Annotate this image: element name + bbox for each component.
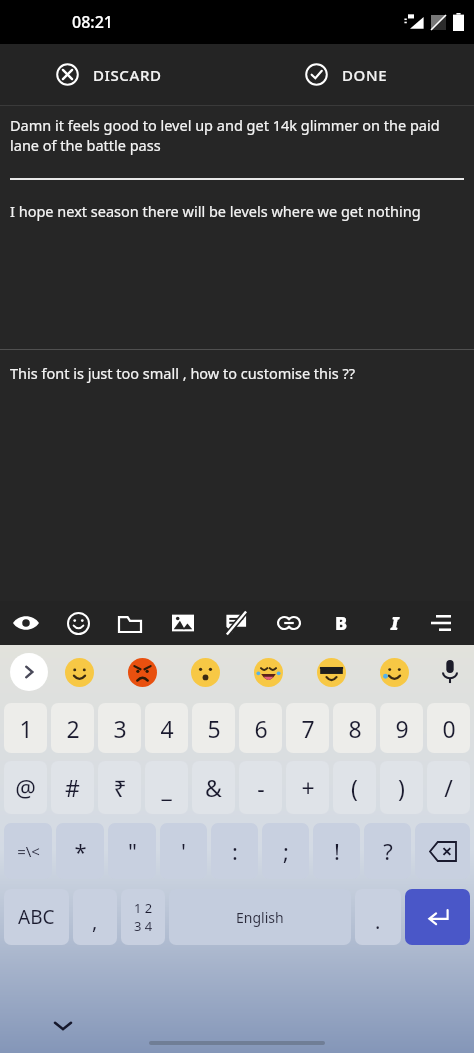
staticText: . (375, 908, 381, 935)
button[interactable]: 0 (427, 703, 470, 753)
button[interactable]: @ (4, 761, 47, 814)
staticText: 3 (113, 713, 127, 744)
staticText: 1 2 (134, 899, 153, 917)
staticText: : (232, 836, 238, 866)
button[interactable]: Preview (0, 601, 52, 645)
button[interactable]: No comment (209, 601, 262, 645)
button[interactable]: 7 (286, 703, 329, 753)
button[interactable]: # (51, 761, 94, 814)
button[interactable]: 1 2 (121, 889, 165, 945)
button[interactable]: ( (333, 761, 376, 814)
staticText: 2 (66, 713, 80, 744)
button[interactable]: Backspace (415, 823, 470, 879)
staticText: 8 (348, 713, 362, 744)
button[interactable]: Emoji (111, 645, 174, 699)
button[interactable]: ₹ (98, 761, 141, 814)
staticText: 7 (301, 713, 315, 744)
button[interactable]: ! (313, 823, 360, 879)
button[interactable]: 1 (4, 703, 47, 753)
button[interactable]: 8 (333, 703, 376, 753)
button[interactable]: ' (160, 823, 207, 879)
staticText: ; (283, 836, 289, 866)
button[interactable]: Emoji (174, 645, 237, 699)
button[interactable]: ? (364, 823, 411, 879)
button[interactable]: Emoji (300, 645, 363, 699)
staticText: & (205, 772, 222, 803)
staticText: + (301, 772, 315, 803)
button[interactable]: , (73, 889, 117, 945)
button[interactable]: / (427, 761, 470, 814)
button[interactable]: 2 (51, 703, 94, 753)
staticText: _ (161, 772, 172, 803)
button[interactable]: ; (262, 823, 309, 879)
button[interactable]: . (355, 889, 401, 945)
button[interactable]: 9 (380, 703, 423, 753)
button[interactable]: 5 (192, 703, 235, 753)
button[interactable]: Voice input (426, 645, 474, 699)
button[interactable]: Folder (104, 601, 156, 645)
button[interactable]: Link (262, 601, 315, 645)
staticText: 5 (207, 713, 221, 744)
staticText: 1 (19, 713, 33, 744)
staticText: 3 4 (134, 917, 153, 935)
button[interactable]: + (286, 761, 329, 814)
staticText: 0 (442, 713, 456, 744)
staticText: / (444, 772, 453, 803)
button[interactable]: Emoji (237, 645, 300, 699)
staticText: @ (15, 772, 36, 803)
staticText: Damn it feels good to level up and get 1… (10, 115, 464, 156)
staticText: * (74, 836, 87, 866)
staticText: , (92, 908, 98, 935)
staticText: ₹ (113, 772, 127, 803)
staticText: - (257, 772, 265, 803)
button[interactable]: Image (156, 601, 209, 645)
button[interactable]: " (108, 823, 156, 879)
staticText: # (65, 772, 80, 803)
button[interactable]: Align (421, 601, 474, 645)
staticText: 9 (395, 713, 409, 744)
button[interactable]: Italic (368, 601, 421, 645)
staticText: DISCARD (93, 65, 162, 85)
staticText: ' (181, 836, 186, 866)
staticText: 08:21 (72, 11, 113, 33)
staticText: This font is just too small , how to cus… (10, 363, 464, 383)
staticText: I hope next season there will be levels … (10, 201, 464, 221)
button[interactable]: Expand (10, 653, 48, 691)
button[interactable]: Emoji (48, 645, 111, 699)
staticText: English (236, 908, 284, 927)
staticText: ) (398, 772, 405, 803)
staticText: ( (351, 772, 358, 803)
button[interactable]: ) (380, 761, 423, 814)
button[interactable]: 6 (239, 703, 282, 753)
button[interactable]: 4 (145, 703, 188, 753)
button[interactable]: & (192, 761, 235, 814)
staticText: DONE (342, 65, 388, 85)
staticText: 4 (160, 713, 174, 744)
button[interactable]: - (239, 761, 282, 814)
staticText: B (335, 611, 348, 636)
button[interactable]: =\< (4, 823, 52, 879)
staticText: ? (383, 836, 393, 866)
button[interactable]: DISCARD (0, 44, 237, 105)
button[interactable]: _ (145, 761, 188, 814)
button[interactable]: : (211, 823, 258, 879)
button[interactable]: Bold (315, 601, 368, 645)
button[interactable]: Emoji (52, 601, 104, 645)
button[interactable]: DONE (237, 44, 474, 105)
staticText: ABC (18, 904, 55, 930)
staticText: " (128, 836, 137, 866)
button[interactable]: Hide keyboard (50, 1013, 76, 1039)
button[interactable]: Emoji (363, 645, 426, 699)
staticText: ! (334, 836, 340, 866)
button[interactable]: ABC (4, 889, 69, 945)
staticText: 6 (254, 713, 268, 744)
button[interactable]: English (169, 889, 351, 945)
button[interactable]: * (56, 823, 104, 879)
staticText: =\< (17, 841, 40, 861)
staticText: I (391, 611, 399, 636)
button[interactable]: 3 (98, 703, 141, 753)
button[interactable]: Enter (405, 889, 470, 945)
